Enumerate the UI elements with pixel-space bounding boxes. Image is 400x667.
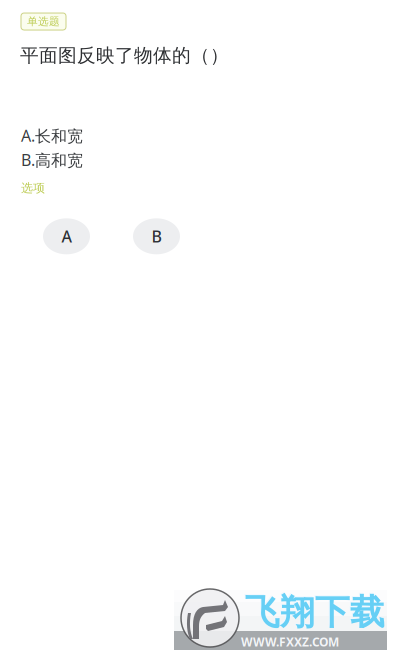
button[interactable]: B bbox=[133, 218, 180, 254]
staticText: 飞翔下载 bbox=[245, 591, 385, 634]
staticText: B bbox=[151, 226, 161, 247]
staticText: A bbox=[61, 226, 71, 247]
button[interactable]: A bbox=[43, 218, 90, 254]
staticText: A.长和宽 bbox=[21, 125, 83, 146]
staticText: 选项 bbox=[21, 181, 45, 195]
staticText: WWW.FXXZ.COM bbox=[241, 634, 339, 650]
staticText: B.高和宽 bbox=[21, 149, 83, 171]
staticText: 平面图反映了物体的（） bbox=[20, 44, 229, 67]
staticText: 单选题 bbox=[27, 15, 60, 28]
staticText: 飞翔下载 bbox=[244, 590, 384, 633]
